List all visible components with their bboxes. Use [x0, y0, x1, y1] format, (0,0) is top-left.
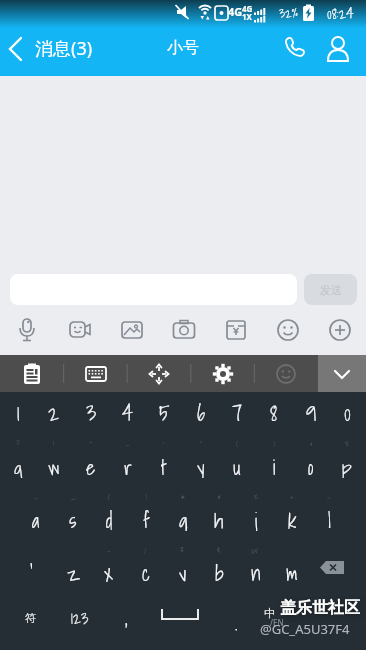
staticText: " [200, 438, 202, 451]
button[interactable]: e [73, 452, 109, 478]
button[interactable]: p [329, 452, 365, 478]
staticText: - [126, 438, 130, 451]
button[interactable]: c [128, 558, 164, 584]
button[interactable]: x [91, 558, 127, 584]
button[interactable]: 9 [293, 395, 329, 421]
button[interactable]: a [18, 505, 54, 531]
staticText: p [342, 452, 352, 478]
staticText: 3 [86, 395, 97, 421]
staticText: % [345, 438, 349, 451]
button[interactable]: j [238, 505, 274, 531]
staticText: d [106, 505, 113, 531]
button[interactable] [314, 305, 366, 355]
staticText: z [67, 558, 80, 584]
button[interactable]: f [128, 505, 164, 531]
staticText: 4 [122, 395, 134, 421]
button[interactable]: 4 [110, 395, 146, 421]
staticText: f [143, 505, 150, 531]
button[interactable]: w [36, 452, 72, 478]
button[interactable]: s [55, 505, 91, 531]
button[interactable]: 1 [0, 395, 36, 421]
button[interactable]: 3 [73, 395, 109, 421]
button[interactable] [53, 305, 106, 355]
button[interactable] [0, 355, 63, 392]
button[interactable]: 7 [219, 395, 255, 421]
button[interactable] [318, 558, 348, 578]
button[interactable] [106, 305, 158, 355]
button[interactable] [127, 355, 190, 392]
button[interactable] [0, 305, 53, 355]
staticText: 08:24 [327, 1, 354, 25]
staticText: 0 [344, 395, 351, 421]
staticText: - [34, 491, 38, 504]
button[interactable]: n [238, 558, 274, 584]
button[interactable]: 5 [146, 395, 182, 421]
button[interactable]: g [165, 505, 201, 531]
staticText: / [144, 544, 147, 557]
button[interactable]: 123 [60, 605, 100, 631]
button[interactable]: z [55, 558, 91, 584]
button[interactable]: r [110, 452, 146, 478]
button[interactable] [322, 33, 354, 65]
staticText: 8 [270, 395, 278, 421]
staticText: 5 [159, 395, 170, 421]
staticText: a [32, 505, 40, 531]
button[interactable]: d [91, 505, 127, 531]
button[interactable]: t [146, 452, 182, 478]
button[interactable]: v [165, 558, 201, 584]
staticText: - [107, 544, 111, 557]
button[interactable] [318, 355, 366, 392]
button[interactable] [262, 305, 314, 355]
staticText: ? [16, 438, 20, 451]
button[interactable]: 发送 [304, 274, 357, 305]
button[interactable]: , [116, 602, 136, 628]
button[interactable]: b [201, 558, 237, 584]
button[interactable]: 6 [183, 395, 219, 421]
staticText: v [179, 558, 187, 584]
staticText: 4G [228, 4, 243, 19]
staticText: * [181, 491, 185, 504]
button[interactable]: 符 [12, 605, 48, 631]
button[interactable] [191, 355, 254, 392]
staticText: ( [108, 491, 111, 504]
staticText: l [328, 505, 331, 531]
staticText: & [310, 438, 313, 451]
button[interactable] [281, 34, 311, 64]
button[interactable]: o [293, 452, 329, 478]
button[interactable]: 8 [256, 395, 292, 421]
button[interactable] [210, 305, 262, 355]
button[interactable] [64, 355, 127, 392]
button[interactable]: h [201, 505, 237, 531]
button[interactable]: 0 [329, 395, 365, 421]
staticText: 中 [264, 606, 275, 620]
button[interactable]: q [0, 452, 36, 478]
button[interactable]: y [183, 452, 219, 478]
staticText: ) [273, 438, 275, 451]
staticText: ~ [89, 438, 93, 451]
button[interactable]: l [311, 505, 347, 531]
button[interactable]: u [219, 452, 255, 478]
button[interactable]: . [226, 607, 246, 633]
staticText: m [286, 558, 298, 584]
staticText: u [233, 452, 241, 478]
button[interactable]: 2 [36, 395, 72, 421]
staticText: c [142, 558, 150, 584]
button[interactable]: 中 [254, 600, 284, 626]
button[interactable] [150, 598, 210, 630]
button[interactable]: m [274, 558, 310, 584]
staticText: . [235, 607, 238, 633]
staticText: ) [145, 491, 147, 504]
staticText: 小号 [167, 38, 199, 58]
staticText: r [124, 452, 132, 478]
button[interactable] [2, 34, 30, 64]
staticText: ( [236, 438, 239, 451]
button[interactable]: i [256, 452, 292, 478]
button[interactable] [158, 305, 210, 355]
button[interactable]: ' [14, 553, 50, 579]
staticText: s [69, 505, 77, 531]
staticText: 123 [71, 605, 89, 631]
button[interactable] [254, 355, 317, 392]
button[interactable]: k [274, 505, 310, 531]
staticText: k [288, 505, 297, 531]
